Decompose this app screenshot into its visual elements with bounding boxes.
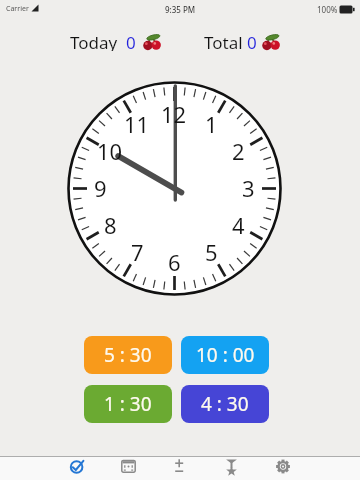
button[interactable]: 5 : 30: [84, 336, 172, 374]
button[interactable]: [209, 456, 253, 480]
button[interactable]: 10 : 00: [181, 336, 269, 374]
staticText: 7: [131, 237, 144, 267]
staticText: 4: [232, 210, 245, 240]
button[interactable]: [55, 456, 99, 480]
staticText: 0: [247, 31, 257, 51]
staticText: 3: [242, 173, 255, 203]
staticText: Carrier: [6, 4, 29, 14]
staticText: 2: [232, 136, 245, 166]
staticText: 1 : 30: [104, 391, 152, 417]
button[interactable]: 4 : 30: [181, 385, 269, 423]
staticText: 0: [126, 31, 136, 51]
staticText: 100%: [317, 4, 338, 15]
staticText: 4 : 30: [201, 391, 249, 417]
staticText: 9:35 PM: [165, 4, 196, 15]
staticText: 5 : 30: [104, 342, 152, 368]
staticText: 6: [168, 247, 181, 277]
staticText: Total: [204, 31, 243, 51]
button[interactable]: [106, 456, 150, 480]
button[interactable]: 1 : 30: [84, 385, 172, 423]
button[interactable]: [158, 456, 202, 480]
button[interactable]: [261, 456, 305, 480]
staticText: 9: [94, 173, 107, 203]
staticText: 1: [205, 109, 218, 139]
staticText: 8: [104, 210, 117, 240]
staticText: 5: [205, 237, 218, 267]
staticText: 10: [97, 136, 123, 166]
staticText: Today: [70, 31, 118, 51]
staticText: 10 : 00: [196, 342, 255, 368]
staticText: 11: [124, 109, 150, 139]
staticText: 12: [161, 99, 187, 129]
